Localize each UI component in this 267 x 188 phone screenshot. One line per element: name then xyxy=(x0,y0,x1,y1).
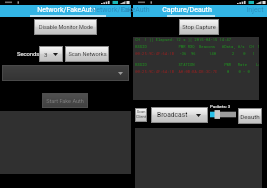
staticText: 3 xyxy=(44,51,48,58)
staticText: Stop Capture xyxy=(182,24,216,31)
staticText: Start Fake Auth xyxy=(46,98,84,104)
button[interactable]: Deauth xyxy=(239,109,261,123)
button[interactable]: Packets slider xyxy=(210,110,236,119)
button[interactable]: 3 xyxy=(40,47,62,61)
staticText: Scan Clients xyxy=(136,109,146,121)
staticText: 00:25:9C:4F:6A:1B xyxy=(133,51,175,56)
staticText: Capture/Deauth xyxy=(121,6,171,14)
button[interactable]: Stop Capture xyxy=(180,20,218,34)
staticText: Scan Networks xyxy=(68,51,107,58)
staticText: Seconds xyxy=(17,51,40,58)
staticText: Broadcast xyxy=(157,111,188,119)
button[interactable]: Scan Clients xyxy=(136,109,146,121)
button[interactable]: Capture/Deauth xyxy=(149,5,225,14)
button[interactable]: Capture/Deauth xyxy=(108,5,184,14)
button[interactable]: Start Fake Auth xyxy=(43,94,87,107)
staticText: Capture/Deauth xyxy=(162,6,212,14)
staticText: Inject xyxy=(246,6,264,14)
button[interactable]: Broadcast xyxy=(152,108,207,122)
staticText: BSSID STATION PWR Rate Lost Fr xyxy=(133,62,259,67)
button[interactable]: Inject xyxy=(217,5,267,14)
button[interactable]: Network/FakeAuth xyxy=(82,5,158,14)
staticText: Network/FakeAuth xyxy=(91,6,150,14)
button[interactable]: Scan Networks xyxy=(66,47,108,61)
staticText: -36 96 140 2 0 1 54e WPA xyxy=(175,51,259,56)
button[interactable]: Disable Monitor Mode xyxy=(35,20,96,34)
button[interactable]: Select network xyxy=(3,66,128,80)
staticText: Deauth xyxy=(240,113,260,120)
staticText: Disable Monitor Mode xyxy=(39,24,93,30)
button[interactable]: Network/FakeAuth xyxy=(28,5,104,14)
staticText: 00:25:9C:4F:6A:1B A0:0B:BA:DB:3C:7E xyxy=(133,69,218,74)
staticText: BSSID PWR RXQ Beacons #Data, #/s CH MB E… xyxy=(133,44,259,49)
staticText: CH 1 ][ Elapsed: 12 s ][ 2015-04-15 14:4… xyxy=(133,37,231,42)
staticText: Packets: 3 xyxy=(210,104,231,109)
staticText: 0 0 - 0 0 xyxy=(218,69,259,74)
staticText: Network/FakeAuth xyxy=(37,6,96,14)
